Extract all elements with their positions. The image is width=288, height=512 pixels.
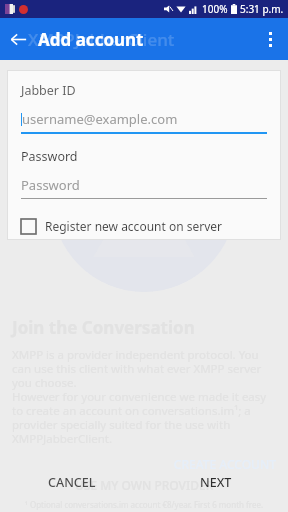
staticText: CREATE ACCOUNT	[12, 456, 276, 472]
staticText: Jabber ID	[21, 82, 76, 99]
button[interactable]: username@example.com	[21, 110, 267, 128]
button[interactable]: Password	[21, 176, 267, 194]
staticText: Register new account on server	[45, 218, 223, 234]
button[interactable]: Register new account on server	[21, 218, 267, 234]
staticText: USE MY OWN PROVIDER	[75, 477, 214, 493]
staticText: username@example.com	[22, 110, 178, 128]
staticText: ¹ Optional conversations.im account €8/y…	[25, 499, 264, 510]
staticText: Password	[21, 176, 80, 194]
button[interactable]: More options	[252, 21, 288, 57]
button[interactable]: CANCEL	[0, 462, 144, 502]
staticText: Join the Conversation	[12, 316, 195, 339]
staticText: Password	[21, 148, 78, 165]
button[interactable]: NEXT	[144, 462, 288, 502]
button[interactable]: Back	[0, 21, 36, 57]
staticText: Add account	[38, 28, 144, 51]
staticText: XMPPJabberClient	[28, 28, 175, 51]
staticText: 5:31 p.m.	[240, 2, 284, 16]
staticText: 100%	[202, 2, 228, 16]
staticText: CANCEL	[48, 474, 96, 491]
staticText: NEXT	[200, 474, 232, 491]
staticText: XMPP is a provider independent protocol.…	[12, 347, 276, 446]
